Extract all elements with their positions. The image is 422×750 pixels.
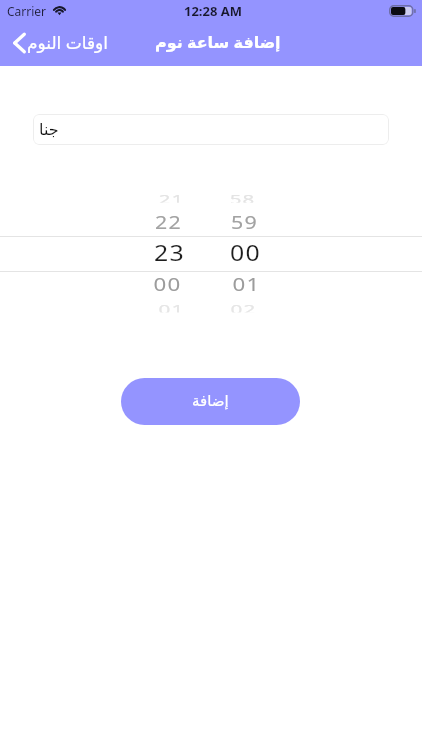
button[interactable]: Hours 21 (136, 186, 206, 209)
button[interactable]: Minutes 58 (207, 186, 277, 209)
staticText: اوقات النوم (27, 31, 109, 54)
button[interactable]: Hours 00 (132, 271, 202, 296)
button[interactable]: Minutes 01 (211, 271, 281, 296)
staticText: 21 (159, 190, 184, 203)
staticText: 00 (153, 272, 181, 291)
staticText: جنا (39, 120, 59, 139)
staticText: 58 (230, 190, 255, 203)
staticText: 22 (155, 210, 182, 231)
staticText: 01 (232, 272, 260, 291)
staticText: Carrier (7, 3, 47, 19)
staticText: إضافة ساعة نوم (155, 31, 281, 53)
button[interactable]: Minutes 59 (209, 209, 279, 236)
button[interactable]: Minutes 02 (208, 296, 278, 319)
staticText: 01 (158, 300, 184, 312)
button[interactable]: Hours 23 (134, 236, 204, 271)
staticText: 23 (154, 236, 185, 267)
button[interactable]: Back (11, 33, 109, 56)
staticText: 59 (231, 210, 258, 231)
button[interactable]: إضافة (121, 378, 300, 425)
button[interactable]: Hours 01 (136, 296, 206, 319)
staticText: 12:28 AM (184, 2, 243, 20)
staticText: 00 (230, 236, 261, 267)
staticText: 02 (230, 300, 256, 312)
button[interactable]: جنا (33, 114, 389, 145)
button[interactable]: Minutes 00 (210, 236, 280, 271)
button[interactable]: Hours 22 (133, 209, 203, 236)
staticText: إضافة (192, 392, 229, 409)
